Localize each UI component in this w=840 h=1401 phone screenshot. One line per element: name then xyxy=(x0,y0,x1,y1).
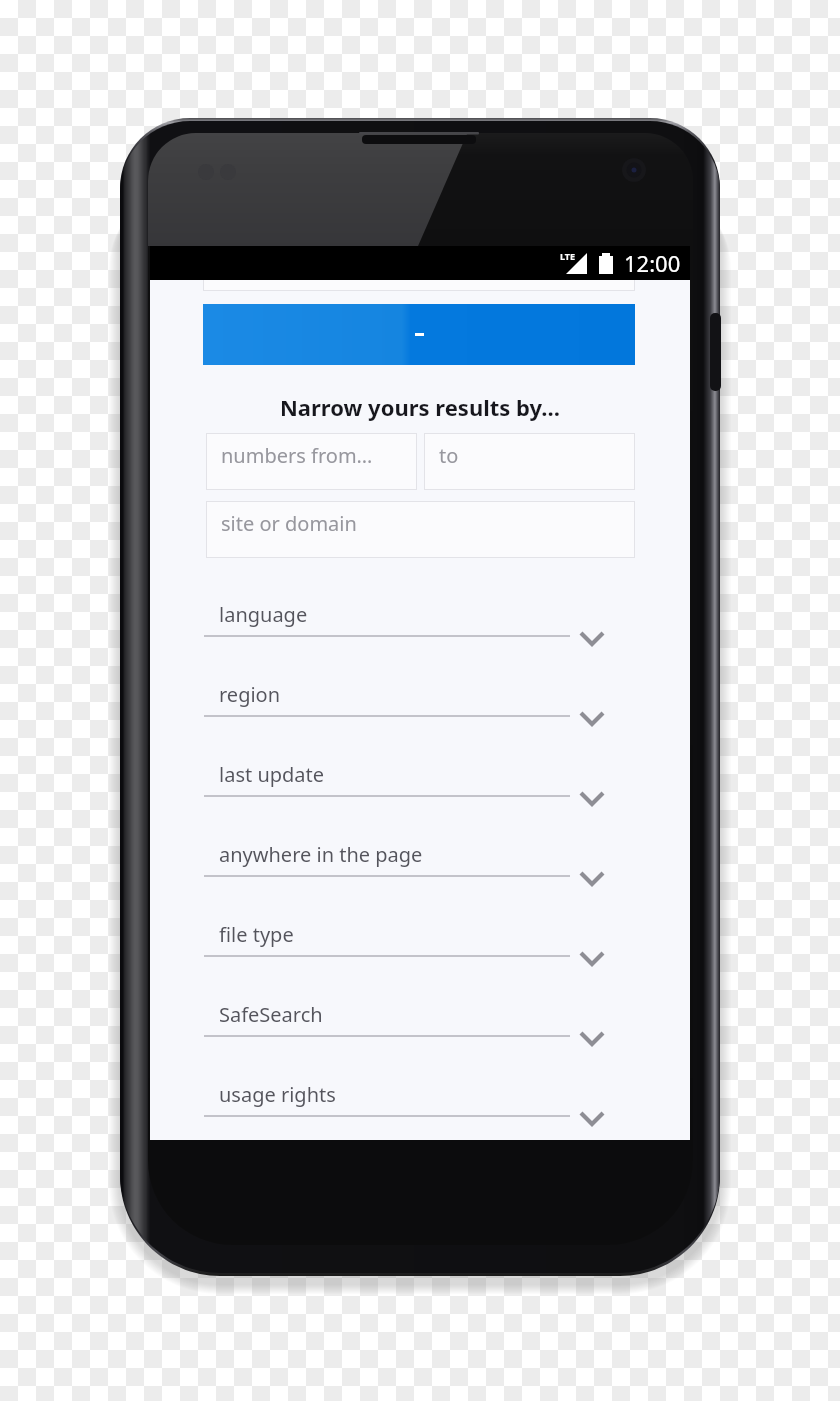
staticText: usage rights xyxy=(219,1081,336,1108)
staticText: site or domain xyxy=(221,510,357,537)
staticText: anywhere in the page xyxy=(219,841,423,868)
button[interactable]: language xyxy=(150,595,690,675)
staticText: LTE xyxy=(560,250,576,262)
staticText: language xyxy=(219,601,308,628)
button[interactable]: to xyxy=(424,433,635,490)
staticText: numbers from… xyxy=(221,442,373,469)
staticText: 12:00 xyxy=(624,248,681,278)
button[interactable]: Search xyxy=(203,304,635,365)
button[interactable]: site or domain xyxy=(206,501,635,558)
staticText: last update xyxy=(219,761,325,788)
button[interactable]: SafeSearch xyxy=(150,995,690,1075)
staticText: SafeSearch xyxy=(219,1001,323,1028)
button[interactable]: last update xyxy=(150,755,690,835)
button[interactable]: anywhere in the page xyxy=(150,835,690,915)
staticText: file type xyxy=(219,921,294,948)
staticText: Narrow yours results by… xyxy=(150,392,690,422)
button[interactable]: usage rights xyxy=(150,1075,690,1155)
staticText: region xyxy=(219,681,281,708)
button[interactable]: region xyxy=(150,675,690,755)
button[interactable]: file type xyxy=(150,915,690,995)
staticText: to xyxy=(439,442,459,469)
button[interactable]: numbers from… xyxy=(206,433,417,490)
